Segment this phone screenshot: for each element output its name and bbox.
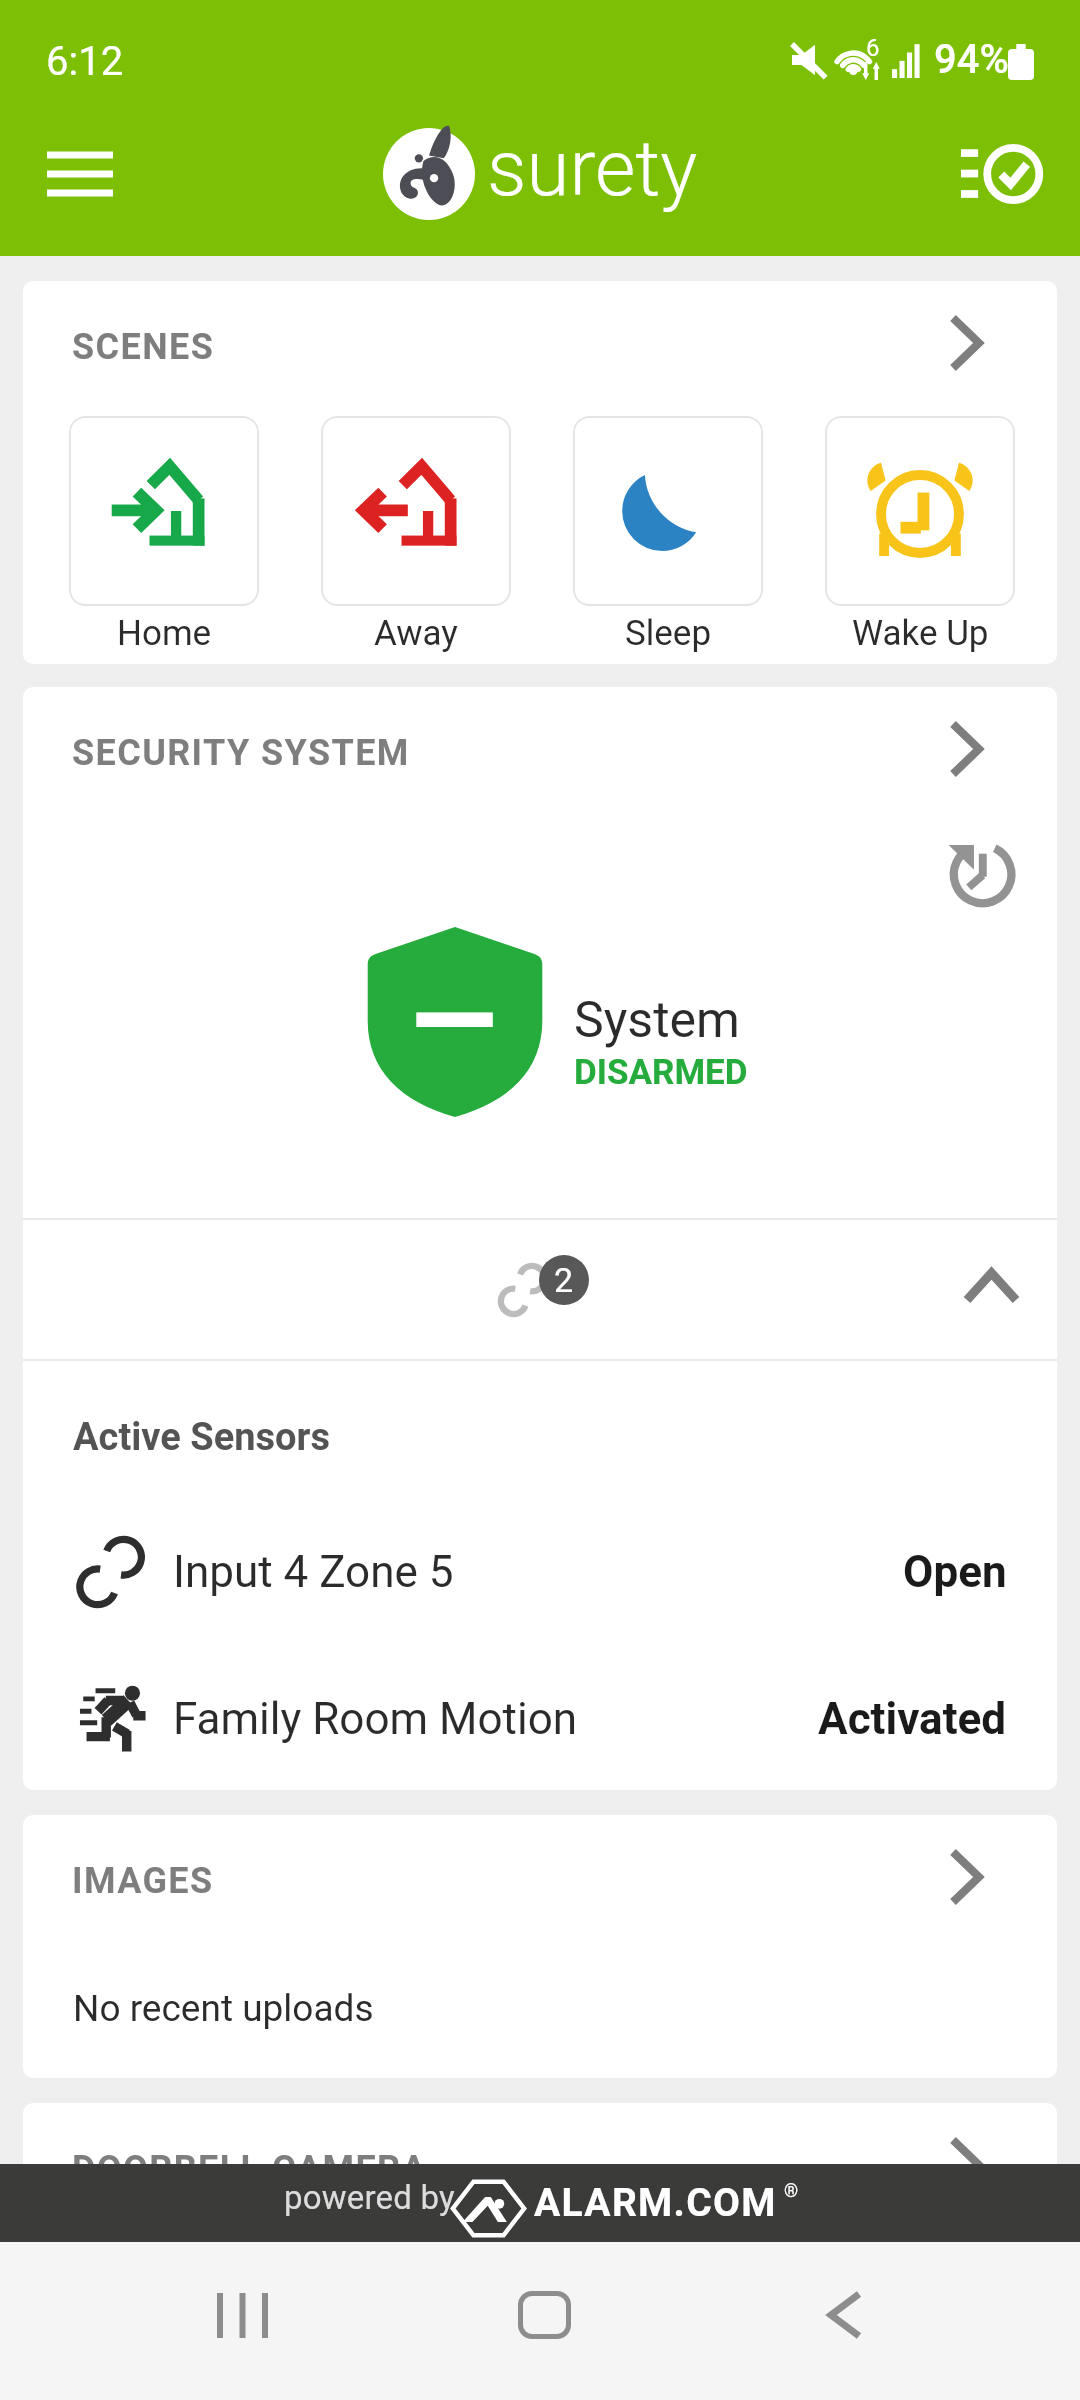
staticText: Away <box>374 613 458 654</box>
button[interactable]: Checklist <box>920 104 1080 244</box>
staticText: System <box>574 991 740 1050</box>
staticText: Input 4 Zone 5 <box>173 1546 454 1598</box>
staticText: IMAGES <box>72 1860 214 1902</box>
staticText: SECURITY SYSTEM <box>72 732 410 774</box>
button[interactable]: Wake Up <box>825 416 1015 654</box>
staticText: Home <box>117 613 212 654</box>
staticText: No recent uploads <box>73 1987 374 2030</box>
button[interactable]: Recent apps <box>180 2269 304 2361</box>
staticText: powered by <box>284 2178 455 2217</box>
button[interactable]: SECURITY SYSTEM <box>23 687 1057 797</box>
button[interactable]: Sleep <box>573 416 763 654</box>
button[interactable]: Family Room Motion <box>73 1678 1007 1760</box>
staticText: 2 <box>554 1260 574 1300</box>
staticText: Activated <box>818 1693 1007 1745</box>
staticText: surety <box>487 123 698 214</box>
button[interactable]: Input 4 Zone 5 <box>73 1534 1007 1610</box>
staticText: Active Sensors <box>73 1415 330 1460</box>
staticText: 94% <box>934 36 1009 83</box>
button[interactable]: History <box>941 837 1021 909</box>
staticText: ® <box>784 2180 799 2201</box>
button[interactable]: 2 <box>23 1220 1057 1359</box>
button[interactable]: Away <box>321 416 511 654</box>
staticText: Family Room Motion <box>173 1693 578 1745</box>
button[interactable]: DOORBELL CAMERA <box>23 2103 1057 2213</box>
staticText: Open <box>903 1546 1007 1598</box>
staticText: Wake Up <box>852 613 989 654</box>
staticText: 6 <box>866 34 880 62</box>
staticText: SCENES <box>72 326 215 368</box>
staticText: DISARMED <box>574 1052 748 1093</box>
button[interactable]: Menu <box>0 104 160 244</box>
button[interactable]: Home <box>69 416 259 654</box>
staticText: ALARM.COM <box>534 2180 777 2226</box>
staticText: 6:12 <box>46 38 124 85</box>
button[interactable]: Back <box>783 2267 907 2363</box>
staticText: DOORBELL CAMERA <box>72 2148 428 2190</box>
button[interactable]: IMAGES <box>23 1815 1057 1925</box>
button[interactable]: SCENES <box>23 281 1057 416</box>
button[interactable]: Home <box>482 2267 606 2363</box>
staticText: Sleep <box>625 613 712 654</box>
